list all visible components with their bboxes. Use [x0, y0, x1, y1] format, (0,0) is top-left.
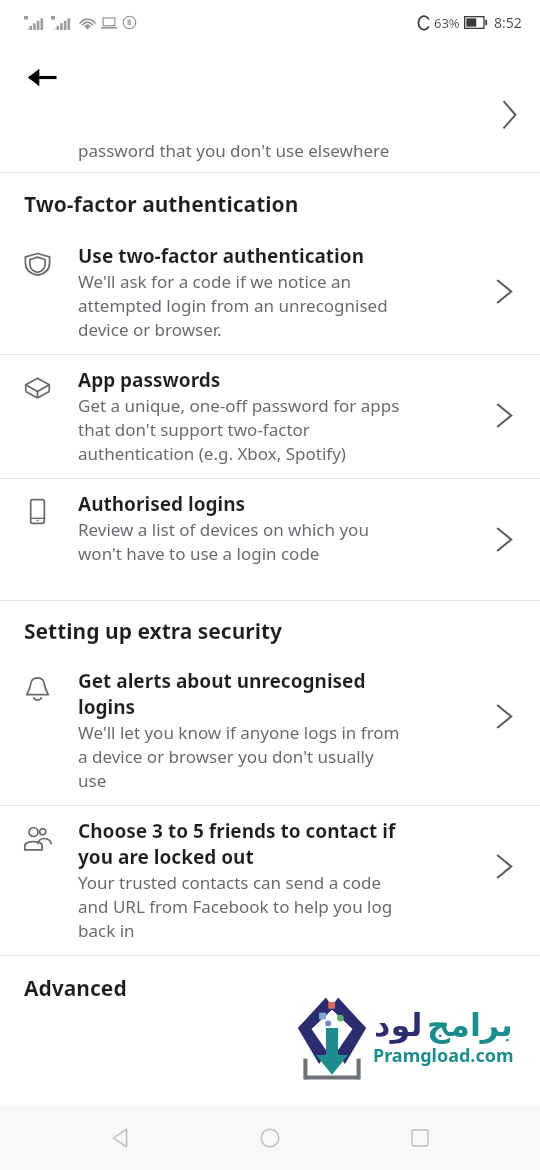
button[interactable]: Get alerts about unrecognised logins	[0, 656, 540, 805]
button[interactable]: Recent apps	[345, 1106, 495, 1170]
button[interactable]: Choose 3 to 5 friends to contact if you …	[0, 806, 540, 955]
button[interactable]: Back	[14, 50, 68, 104]
staticText: App passwords	[78, 367, 221, 393]
staticText: Choose 3 to 5 friends to contact if you …	[78, 818, 396, 870]
button[interactable]: Use two-factor authentication	[0, 231, 540, 354]
button[interactable]: Home	[195, 1106, 345, 1170]
button[interactable]: Authorised logins	[0, 479, 540, 600]
staticText: Get a unique, one-off password for apps …	[78, 394, 400, 465]
button[interactable]: App passwords	[0, 355, 540, 478]
button[interactable]: password that you don't use elsewhere	[0, 110, 540, 172]
staticText: Authorised logins	[78, 491, 246, 517]
staticText: برامج	[427, 1006, 513, 1043]
staticText: 63%	[434, 14, 460, 32]
staticText: We'll ask for a code if we notice an att…	[78, 270, 388, 341]
staticText: 8:52	[494, 13, 522, 32]
staticText: Advanced	[24, 974, 127, 1003]
staticText: لود	[374, 1006, 423, 1043]
staticText: Your trusted contacts can send a code an…	[78, 871, 393, 942]
staticText: Setting up extra security	[24, 617, 283, 646]
staticText: Pramgload.com	[373, 1043, 514, 1068]
staticText: Get alerts about unrecognised logins	[78, 668, 366, 720]
staticText: Two-factor authentication	[24, 190, 299, 219]
button[interactable]: Back	[45, 1106, 195, 1170]
staticText: We'll let you know if anyone logs in fro…	[78, 721, 400, 792]
staticText: Use two-factor authentication	[78, 243, 365, 269]
staticText: password that you don't use elsewhere	[78, 139, 390, 162]
staticText: Review a list of devices on which you wo…	[78, 518, 369, 565]
